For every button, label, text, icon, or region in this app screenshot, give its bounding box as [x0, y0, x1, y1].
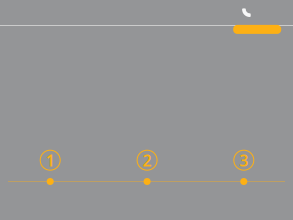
button[interactable]: Continue [233, 25, 281, 34]
button[interactable]: Call in progress [239, 5, 253, 21]
button[interactable]: 2 [125, 149, 169, 193]
button[interactable]: 3 [222, 149, 266, 193]
button[interactable]: 1 [28, 149, 72, 193]
staticText: 3 [239, 150, 248, 171]
staticText: 1 [46, 150, 55, 171]
staticText: 2 [143, 150, 152, 171]
